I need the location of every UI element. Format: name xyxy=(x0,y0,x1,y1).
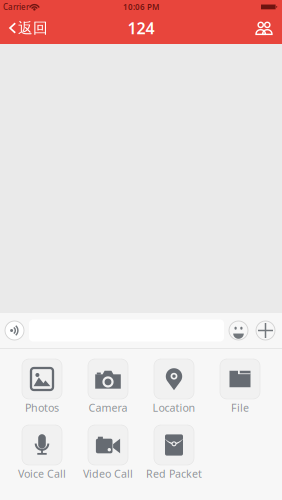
button[interactable]: Video Call xyxy=(75,425,141,479)
button[interactable]: Photos xyxy=(9,359,75,413)
button[interactable]: Voice input xyxy=(0,313,29,348)
button[interactable]: Red Packet xyxy=(141,425,207,479)
button[interactable]: More xyxy=(253,313,278,348)
button[interactable]: Location xyxy=(141,359,207,413)
button[interactable]: Emoji xyxy=(224,313,253,348)
staticText: Camera xyxy=(88,400,127,415)
staticText: 124 xyxy=(127,17,154,39)
button[interactable]: 返回 xyxy=(0,15,54,40)
staticText: 10:06 PM xyxy=(123,2,159,12)
staticText: Red Packet xyxy=(146,466,202,481)
staticText: File xyxy=(231,400,249,415)
staticText: Video Call xyxy=(83,466,133,481)
staticText: 返回 xyxy=(18,19,48,37)
staticText: Location xyxy=(152,400,195,415)
button[interactable]: Group members xyxy=(249,15,282,40)
staticText: Photos xyxy=(25,400,59,415)
staticText: Carrier xyxy=(3,2,29,12)
button[interactable]: Camera xyxy=(75,359,141,413)
button[interactable]: Voice Call xyxy=(9,425,75,479)
staticText: Voice Call xyxy=(18,466,66,481)
button[interactable]: File xyxy=(207,359,273,413)
